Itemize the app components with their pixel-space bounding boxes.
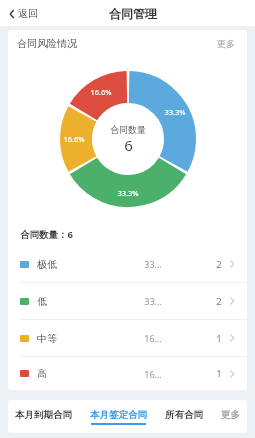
- staticText: 极低: [37, 258, 57, 271]
- button[interactable]: 本月到期合同: [13, 407, 74, 427]
- staticText: 33.3%: [164, 107, 186, 117]
- staticText: 合同数量：6: [20, 228, 73, 241]
- staticText: 16.6%: [63, 134, 85, 144]
- button[interactable]: 更多: [219, 407, 242, 427]
- staticText: 33...: [144, 258, 162, 270]
- staticText: 2: [216, 258, 222, 271]
- staticText: 本月签定合同: [90, 409, 147, 421]
- button[interactable]: 低: [8, 283, 247, 319]
- staticText: 中等: [37, 332, 57, 345]
- button[interactable]: 返回: [5, 3, 42, 24]
- staticText: 合同管理: [109, 6, 157, 21]
- staticText: 合同数量: [110, 124, 146, 135]
- button[interactable]: 所有合同: [163, 407, 205, 427]
- staticText: 6: [124, 135, 133, 155]
- staticText: 返回: [18, 7, 38, 20]
- staticText: 1: [216, 367, 222, 380]
- staticText: 低: [37, 295, 47, 308]
- staticText: 33...: [144, 295, 162, 307]
- button[interactable]: 极低: [8, 246, 247, 282]
- staticText: 33.3%: [117, 188, 139, 198]
- button[interactable]: 中等: [8, 320, 247, 356]
- staticText: 1: [216, 332, 222, 345]
- button[interactable]: 高: [8, 357, 247, 390]
- button[interactable]: 更多: [214, 35, 238, 52]
- staticText: 更多: [217, 38, 235, 49]
- button[interactable]: 本月签定合同: [88, 407, 149, 427]
- staticText: 高: [37, 367, 47, 380]
- staticText: 16...: [144, 368, 162, 380]
- staticText: 16...: [144, 332, 162, 344]
- staticText: 2: [216, 295, 222, 308]
- staticText: 本月到期合同: [15, 409, 72, 421]
- staticText: 所有合同: [165, 409, 203, 421]
- staticText: 合同风险情况: [17, 37, 77, 50]
- staticText: 16.6%: [90, 87, 112, 97]
- staticText: 更多: [221, 409, 240, 421]
